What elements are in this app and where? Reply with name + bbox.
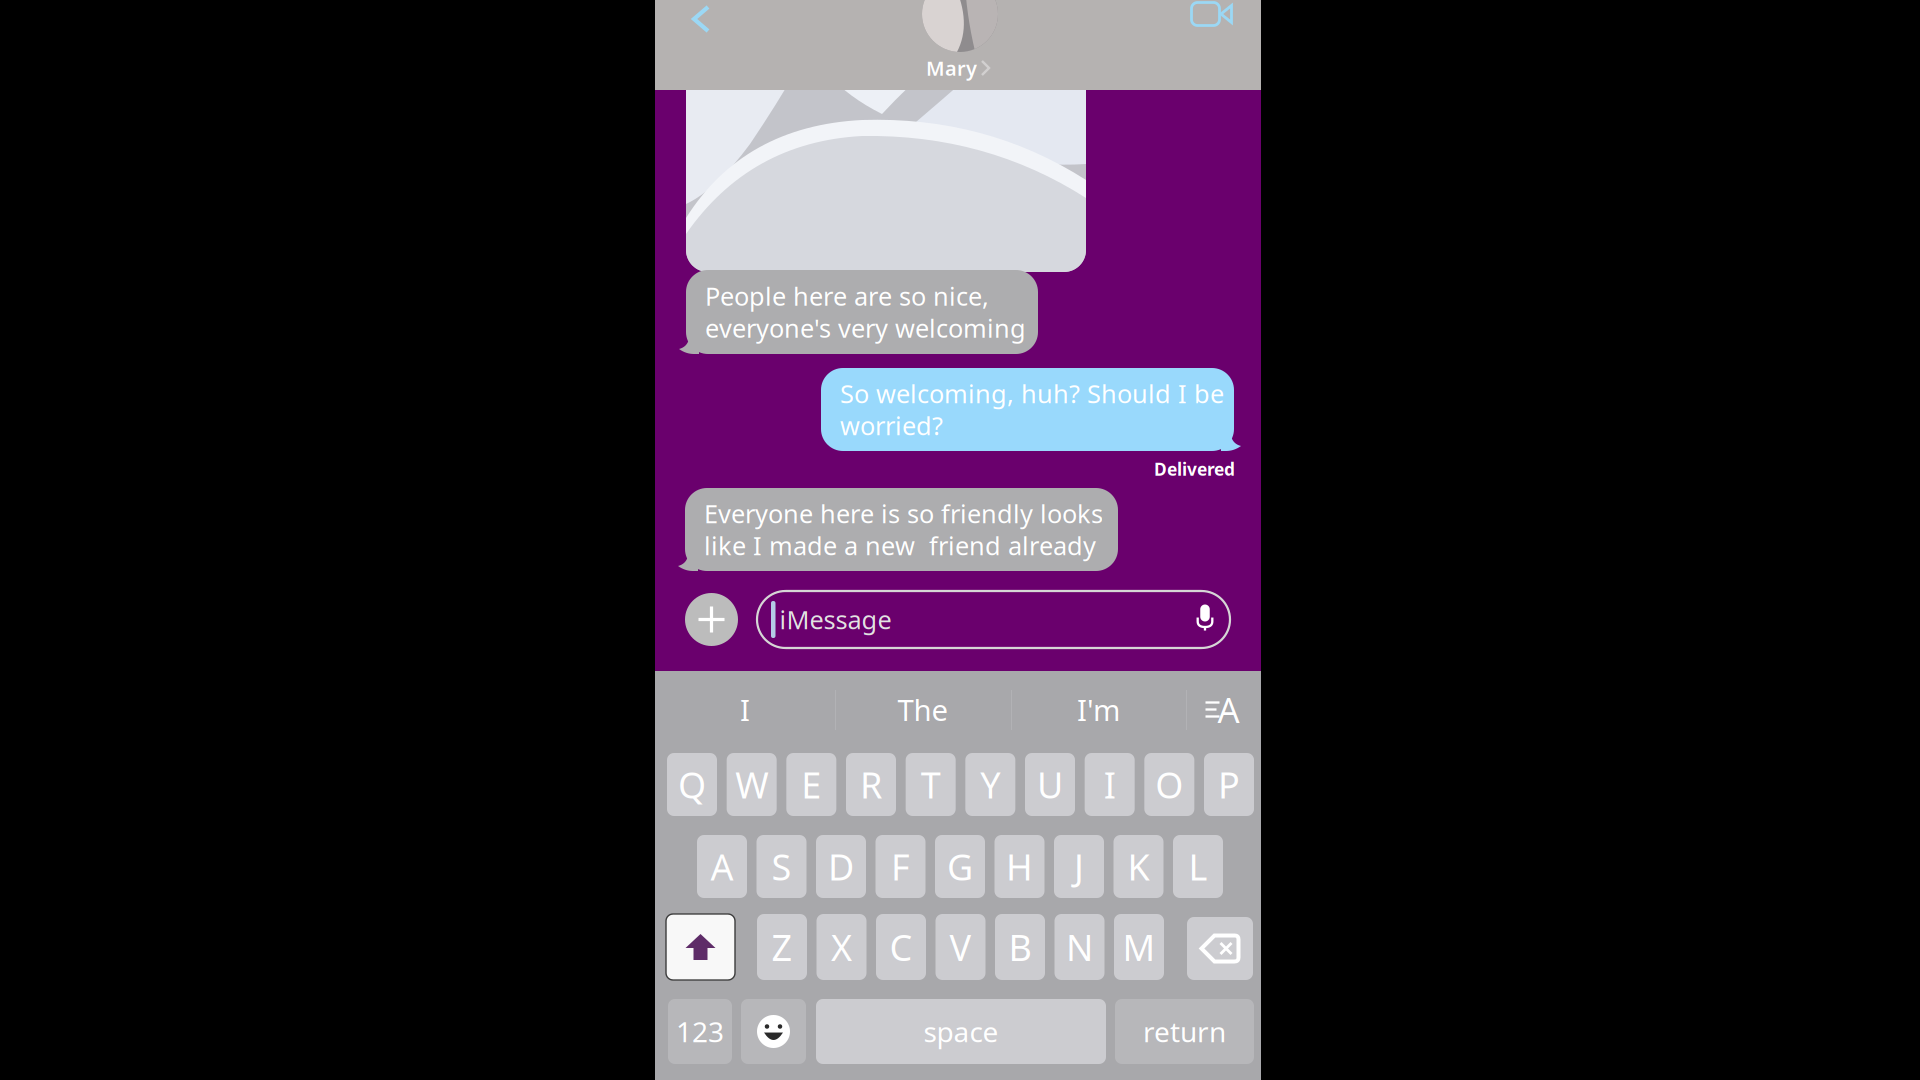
button[interactable]: Delete: [1187, 917, 1253, 980]
button[interactable]: E: [786, 753, 836, 816]
staticText: G: [947, 843, 973, 890]
button[interactable]: H: [994, 835, 1044, 898]
staticText: Y: [980, 761, 1000, 808]
staticText: like I made a new friend already: [704, 529, 1096, 562]
staticText: F: [891, 843, 910, 890]
staticText: Z: [771, 923, 792, 971]
button[interactable]: P: [1204, 753, 1254, 816]
staticText: M: [1122, 923, 1155, 971]
staticText: 123: [676, 1013, 724, 1050]
staticText: I: [740, 690, 750, 729]
button[interactable]: I: [655, 671, 835, 748]
staticText: V: [949, 923, 971, 971]
staticText: everyone's very welcoming: [705, 311, 1026, 345]
staticText: E: [801, 761, 821, 808]
staticText: X: [831, 923, 852, 971]
button[interactable]: J: [1054, 835, 1104, 898]
button[interactable]: I: [1085, 753, 1135, 816]
staticText: W: [735, 761, 768, 808]
button[interactable]: R: [846, 753, 896, 816]
staticText: N: [1066, 923, 1093, 971]
staticText: L: [1188, 843, 1207, 890]
button[interactable]: Predictive text: [1186, 671, 1261, 748]
staticText: J: [1074, 843, 1084, 890]
button[interactable]: W: [727, 753, 777, 816]
button[interactable]: A: [697, 835, 747, 898]
button[interactable]: N: [1054, 914, 1104, 980]
button[interactable]: D: [816, 835, 866, 898]
button[interactable]: Back: [676, 0, 726, 44]
button[interactable]: C: [876, 914, 926, 980]
button[interactable]: return: [1115, 999, 1254, 1064]
staticText: Mary: [926, 55, 977, 81]
button[interactable]: Z: [757, 914, 807, 980]
button[interactable]: K: [1113, 835, 1163, 898]
staticText: Q: [678, 761, 706, 808]
staticText: R: [860, 761, 882, 808]
staticText: C: [889, 923, 912, 971]
staticText: S: [771, 843, 791, 890]
staticText: People here are so nice,: [705, 279, 989, 313]
staticText: H: [1006, 843, 1033, 890]
staticText: A: [1217, 686, 1239, 732]
button[interactable]: FaceTime: [1187, 0, 1237, 39]
staticText: B: [1008, 923, 1031, 971]
button[interactable]: B: [995, 914, 1045, 980]
staticText: T: [921, 761, 941, 808]
button[interactable]: Q: [667, 753, 717, 816]
button[interactable]: O: [1144, 753, 1194, 816]
button[interactable]: Shift: [666, 914, 735, 980]
staticText: I'm: [1077, 690, 1120, 729]
staticText: The: [897, 690, 948, 729]
button[interactable]: S: [756, 835, 806, 898]
button[interactable]: 123: [668, 999, 732, 1064]
staticText: U: [1037, 761, 1063, 808]
staticText: K: [1127, 843, 1149, 890]
staticText: space: [923, 1013, 998, 1050]
button[interactable]: Emoji: [741, 999, 806, 1064]
button[interactable]: X: [816, 914, 866, 980]
staticText: I: [1104, 761, 1116, 808]
staticText: A: [710, 843, 733, 890]
button[interactable]: M: [1114, 914, 1164, 980]
button[interactable]: L: [1173, 835, 1223, 898]
staticText: So welcoming, huh? Should I be: [840, 377, 1224, 410]
staticText: Delivered: [1154, 457, 1235, 480]
staticText: O: [1155, 761, 1183, 808]
staticText: Everyone here is so friendly looks: [704, 497, 1103, 530]
staticText: worried?: [840, 409, 943, 442]
button[interactable]: U: [1025, 753, 1075, 816]
button[interactable]: The: [835, 671, 1011, 748]
button[interactable]: space: [816, 999, 1106, 1064]
button[interactable]: G: [935, 835, 985, 898]
button[interactable]: F: [875, 835, 925, 898]
button[interactable]: I'm: [1011, 671, 1186, 748]
button[interactable]: T: [906, 753, 956, 816]
staticText: P: [1218, 761, 1240, 808]
staticText: iMessage: [779, 603, 891, 636]
button[interactable]: Add attachment: [685, 593, 738, 646]
button[interactable]: iMessage: [757, 591, 1230, 648]
button[interactable]: Y: [965, 753, 1015, 816]
button[interactable]: Mary: [855, 56, 1060, 80]
staticText: D: [828, 843, 854, 890]
staticText: return: [1143, 1013, 1226, 1050]
button[interactable]: V: [935, 914, 985, 980]
